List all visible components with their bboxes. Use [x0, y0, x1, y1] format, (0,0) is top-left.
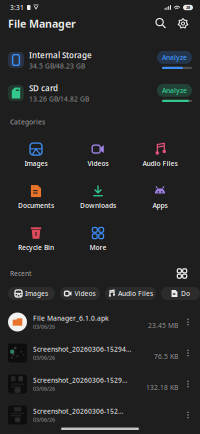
- staticText: 23.45 MB: [148, 321, 178, 330]
- staticText: File Manager_6.1.0.apk: [33, 314, 109, 323]
- staticText: 03/06/26: [33, 385, 55, 392]
- button[interactable]: Downloads: [67, 176, 129, 218]
- button[interactable]: Screenshot_20260306-152…: [0, 399, 200, 430]
- staticText: 76.5 KB: [154, 352, 178, 361]
- staticText: Videos: [87, 159, 108, 168]
- staticText: 03/06/26: [33, 323, 55, 330]
- button[interactable]: Do: [161, 287, 200, 300]
- button[interactable]: Recycle Bin: [5, 218, 67, 260]
- button[interactable]: Settings: [174, 14, 192, 32]
- staticText: File Manager: [8, 16, 76, 31]
- button[interactable]: SD card: [0, 76, 200, 109]
- staticText: Documents: [18, 201, 54, 210]
- staticText: 03/06/26: [33, 354, 55, 361]
- staticText: Images: [24, 159, 47, 168]
- button[interactable]: Audio Files: [129, 134, 191, 176]
- staticText: 34.5 GB/48.23 GB: [29, 61, 85, 70]
- staticText: Analyze: [162, 53, 187, 62]
- button[interactable]: Internal Storage: [0, 43, 200, 76]
- button[interactable]: Documents: [5, 176, 67, 218]
- staticText: 13.26 GB/14.82 GB: [29, 94, 89, 103]
- staticText: 03/06/26: [33, 416, 55, 423]
- staticText: Categories: [10, 118, 45, 126]
- staticText: 28: [186, 5, 190, 10]
- button[interactable]: Search: [152, 14, 170, 32]
- staticText: Images: [25, 289, 48, 298]
- staticText: Audio Files: [142, 159, 177, 168]
- staticText: SD card: [29, 83, 58, 93]
- staticText: 3:31: [10, 3, 24, 12]
- staticText: Analyze: [162, 86, 187, 95]
- staticText: Apps: [152, 201, 167, 210]
- button[interactable]: File Manager_6.1.0.apk: [0, 306, 200, 337]
- staticText: Screenshot_20260306-15294…: [33, 345, 131, 354]
- staticText: Recycle Bin: [18, 243, 54, 252]
- staticText: Screenshot_20260306-1529…: [33, 376, 127, 385]
- staticText: Audio Files: [118, 289, 153, 298]
- button[interactable]: More: [67, 218, 129, 260]
- staticText: Videos: [74, 289, 95, 298]
- staticText: More: [89, 243, 106, 252]
- button[interactable]: Videos: [67, 134, 129, 176]
- staticText: 132.18 KB: [146, 383, 178, 392]
- button[interactable]: Screenshot_20260306-15294…: [0, 337, 200, 368]
- button[interactable]: Grid view: [174, 265, 190, 281]
- staticText: Downloads: [80, 201, 116, 210]
- staticText: Recent: [10, 269, 32, 278]
- button[interactable]: Apps: [129, 176, 191, 218]
- staticText: Do: [181, 289, 190, 298]
- button[interactable]: Images: [5, 134, 67, 176]
- staticText: Screenshot_20260306-152…: [33, 407, 123, 416]
- button[interactable]: Audio Files: [105, 287, 156, 300]
- button[interactable]: Screenshot_20260306-1529…: [0, 368, 200, 399]
- button[interactable]: Images: [8, 287, 55, 300]
- staticText: Internal Storage: [29, 50, 92, 60]
- button[interactable]: Videos: [60, 287, 100, 300]
